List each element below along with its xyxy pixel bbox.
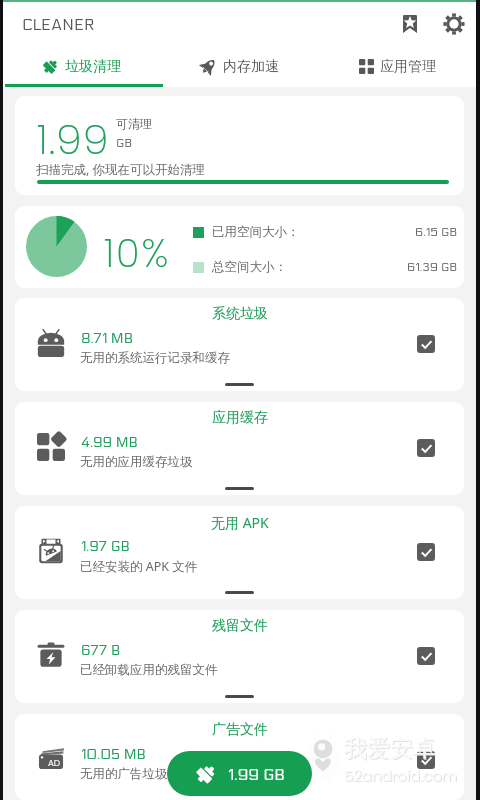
staticText: GB — [116, 136, 133, 150]
staticText: 垃圾清理 — [65, 58, 121, 76]
staticText: 52android.com — [344, 765, 458, 786]
staticText: 已经卸载应用的残留文件 — [80, 662, 218, 678]
button[interactable]: 1.99 GB — [167, 751, 312, 796]
button[interactable]: 残留文件 — [15, 610, 464, 703]
staticText: 10% — [104, 226, 171, 281]
staticText: 我爱安卓 — [344, 734, 436, 763]
staticText: 61.39 GB — [407, 260, 458, 274]
button[interactable]: 无用 APK — [15, 506, 464, 599]
staticText: 广告文件 — [212, 721, 268, 739]
button[interactable]: Toggle — [417, 543, 435, 561]
staticText: 10.05 MB — [81, 746, 146, 763]
staticText: 1.99 GB — [228, 765, 285, 784]
button[interactable]: Toggle — [417, 439, 435, 457]
staticText: 无用的广告垃圾文件 — [80, 766, 193, 782]
staticText: 52android.com — [345, 766, 459, 787]
button[interactable]: 系统垃圾 — [15, 298, 464, 391]
staticText: 1.97 GB — [81, 538, 130, 555]
staticText: 无用的应用缓存垃圾 — [80, 454, 193, 470]
button[interactable]: Toggle — [417, 647, 435, 665]
button[interactable]: 广告文件 — [15, 714, 464, 800]
button[interactable]: 应用缓存 — [15, 402, 464, 495]
staticText: 1.99 — [37, 111, 110, 168]
staticText: 残留文件 — [212, 617, 268, 635]
staticText: 6.15 GB — [415, 225, 458, 239]
staticText: AD — [48, 757, 61, 770]
staticText: 8.71 MB — [81, 330, 133, 347]
staticText: 可清理 — [116, 116, 152, 131]
staticText: 我爱安卓 — [345, 735, 437, 764]
button[interactable]: Toggle — [417, 335, 435, 353]
staticText: 已经安装的 APK 文件 — [80, 558, 198, 575]
staticText: 应用缓存 — [212, 409, 268, 427]
staticText: 677 B — [81, 642, 121, 659]
button[interactable]: 应用管理 — [318, 46, 476, 87]
staticText: 已用空间大小： — [212, 224, 300, 240]
button[interactable]: 内存加速 — [160, 46, 318, 87]
button[interactable]: 垃圾清理 — [3, 46, 160, 87]
staticText: 无用 APK — [211, 513, 269, 532]
button[interactable]: Toggle — [417, 751, 435, 769]
staticText: 总空间大小： — [212, 259, 287, 275]
staticText: 应用管理 — [380, 58, 436, 76]
staticText: 系统垃圾 — [212, 305, 268, 323]
staticText: 扫描完成, 你现在可以开始清理 — [36, 161, 206, 178]
staticText: 4.99 MB — [81, 434, 138, 451]
button[interactable]: Settings — [434, 2, 474, 46]
staticText: 无用的系统运行记录和缓存 — [80, 350, 230, 366]
staticText: 内存加速 — [223, 58, 279, 76]
button[interactable]: Bookmark — [390, 2, 430, 46]
staticText: CLEANER — [22, 15, 95, 34]
